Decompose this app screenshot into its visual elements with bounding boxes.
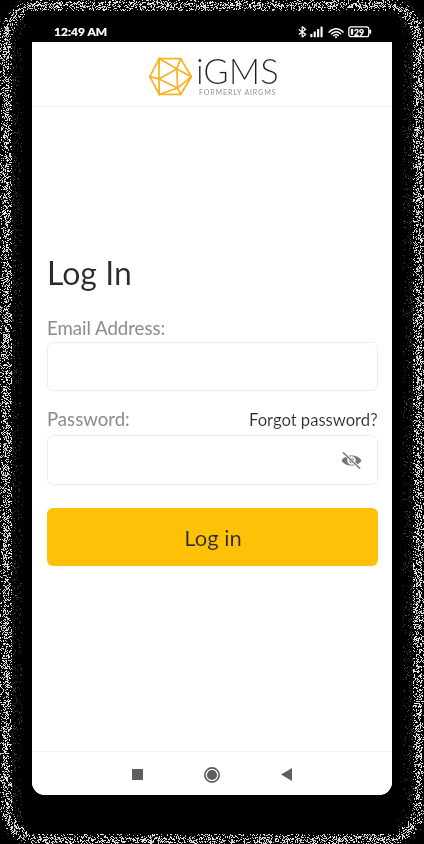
staticText: Password: — [47, 408, 130, 430]
staticText: Email Address: — [47, 317, 166, 339]
staticText: Log in — [184, 524, 242, 550]
staticText: 29 — [354, 28, 364, 38]
button[interactable]: Email Address input — [47, 342, 378, 391]
staticText: 12:49 AM — [54, 24, 108, 38]
staticText: Forgot password? — [249, 410, 378, 430]
staticText: FORMERLY AIRGMS — [199, 88, 277, 97]
button[interactable]: Home — [188, 758, 236, 791]
staticText: iGMS — [196, 50, 279, 92]
staticText: Log In — [47, 253, 132, 291]
button[interactable]: Back — [262, 758, 310, 791]
button[interactable]: Show password — [338, 447, 364, 473]
button[interactable]: Log in — [47, 508, 378, 566]
button[interactable]: Password input — [47, 435, 378, 485]
button[interactable]: Recent apps — [113, 758, 161, 791]
button[interactable]: Forgot password? — [249, 410, 378, 430]
